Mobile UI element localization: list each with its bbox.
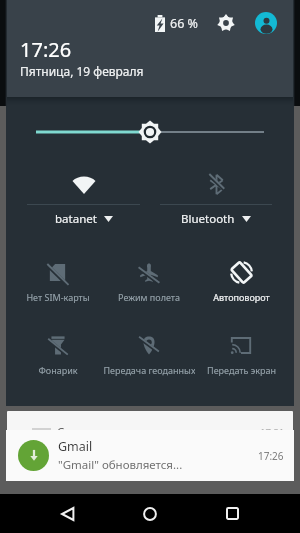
button[interactable]: Gmail (6, 430, 294, 481)
staticText: 17:26 (258, 449, 284, 463)
button[interactable]: Снимок экрана (7, 411, 293, 430)
button[interactable]: Нет SIM-карты (12, 259, 103, 303)
button[interactable]: Back (45, 494, 89, 533)
staticText: Пятница, 19 февраля (20, 63, 144, 79)
button[interactable]: Передать экран (195, 332, 287, 376)
staticText: Gmail (58, 438, 93, 455)
staticText: Передать экран (207, 364, 276, 376)
button[interactable]: Автоповорот (195, 259, 287, 303)
button[interactable]: Brightness (0, 118, 300, 146)
button[interactable]: Bluetooth (160, 170, 272, 232)
staticText: Bluetooth (181, 211, 235, 227)
staticText: Снимок экрана (57, 424, 142, 430)
staticText: Автоповорот (213, 291, 270, 303)
button[interactable]: User profile (255, 12, 277, 34)
staticText: Нет SIM-карты (26, 291, 90, 303)
staticText: "Gmail" обновляется... (58, 457, 183, 473)
staticText: Фонарик (38, 364, 78, 376)
button[interactable]: Передача геоданных (103, 332, 195, 376)
staticText: 66 % (170, 15, 198, 32)
staticText: batanet (55, 211, 97, 227)
staticText: 17:21 (260, 426, 285, 430)
button[interactable]: Фонарик (12, 332, 103, 376)
button[interactable]: batanet (27, 170, 140, 232)
button[interactable]: Home (128, 494, 172, 533)
button[interactable]: Recent apps (210, 494, 254, 533)
staticText: Передача геоданных (103, 364, 195, 376)
button[interactable]: Режим полета (103, 259, 195, 303)
staticText: Режим полета (118, 291, 180, 303)
staticText: 17:26 (20, 36, 72, 63)
button[interactable]: Settings (215, 12, 237, 34)
